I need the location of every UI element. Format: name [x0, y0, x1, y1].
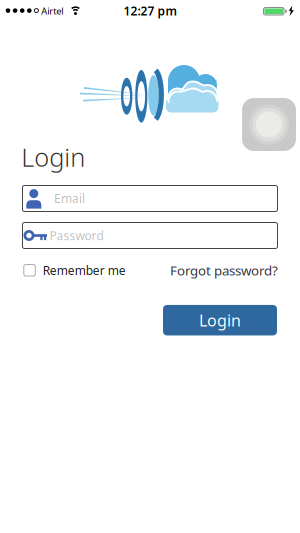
staticText: Email	[54, 190, 85, 206]
staticText: Airtel	[41, 5, 63, 17]
button[interactable]: Login	[163, 305, 277, 335]
staticText: Login	[21, 140, 85, 174]
button[interactable]: Remember me	[23, 262, 173, 278]
staticText: Password	[49, 228, 103, 244]
button[interactable]: AssistiveTouch	[242, 98, 296, 151]
button[interactable]: Forgot password?	[118, 261, 278, 279]
staticText: Login	[199, 310, 241, 331]
staticText: 12:27 pm	[123, 3, 177, 19]
button[interactable]: Email	[22, 185, 277, 211]
button[interactable]: Password	[22, 222, 277, 248]
staticText: Forgot password?	[170, 261, 278, 279]
staticText: Remember me	[43, 262, 126, 278]
